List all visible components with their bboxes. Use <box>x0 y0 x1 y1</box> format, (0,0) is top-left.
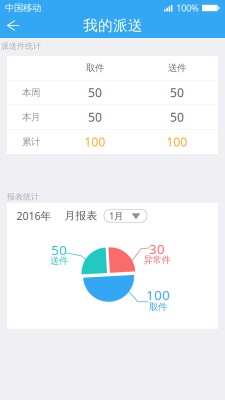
staticText: 50 <box>170 109 184 125</box>
button[interactable]: 1月 <box>104 209 147 222</box>
staticText: 2016年 <box>16 209 51 223</box>
button[interactable]: Back <box>1 15 26 36</box>
staticText: 50 <box>88 109 102 125</box>
staticText: 100 <box>146 286 170 304</box>
staticText: 异常件 <box>143 254 170 266</box>
staticText: 取件 <box>86 62 104 74</box>
staticText: 取件 <box>149 301 167 313</box>
staticText: 送件 <box>168 62 186 74</box>
staticText: 本月 <box>22 111 40 123</box>
staticText: 中国移动 <box>5 2 41 14</box>
staticText: 月报表 <box>64 209 97 222</box>
staticText: 50 <box>170 85 184 100</box>
staticText: 100 <box>166 134 187 150</box>
staticText: 送件 <box>50 255 68 267</box>
staticText: 派送件统计 <box>1 41 41 51</box>
staticText: 本周 <box>22 87 40 98</box>
staticText: 30 <box>149 240 165 258</box>
staticText: 100% <box>176 2 199 14</box>
staticText: 累计 <box>22 136 40 148</box>
staticText: 1月 <box>109 210 123 222</box>
staticText: 100 <box>84 134 105 150</box>
staticText: 报表统计 <box>7 192 39 202</box>
staticText: 50 <box>51 241 67 259</box>
staticText: 我的派送 <box>83 16 143 34</box>
staticText: 50 <box>88 85 102 100</box>
